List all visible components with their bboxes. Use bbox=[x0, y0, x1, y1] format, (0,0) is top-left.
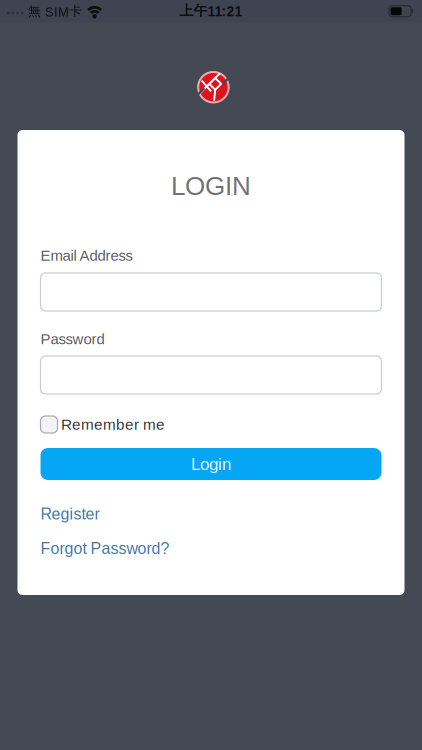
staticText: Remember me bbox=[61, 416, 165, 433]
button[interactable] bbox=[40, 273, 381, 311]
staticText: LOGIN bbox=[171, 171, 251, 200]
button[interactable]: Register bbox=[40, 504, 99, 524]
button[interactable] bbox=[40, 356, 381, 394]
staticText: 無 SIM卡 bbox=[28, 3, 82, 19]
staticText: Login bbox=[191, 454, 231, 473]
staticText: Forgot Password? bbox=[40, 540, 169, 557]
button[interactable]: Forgot Password? bbox=[40, 538, 169, 558]
staticText: 上午11:21 bbox=[179, 2, 242, 19]
button[interactable]: Remember me bbox=[40, 415, 165, 433]
button[interactable]: Login bbox=[40, 448, 381, 480]
staticText: Register bbox=[40, 505, 99, 523]
staticText: Password bbox=[40, 331, 104, 347]
staticText: Email Address bbox=[40, 247, 132, 264]
